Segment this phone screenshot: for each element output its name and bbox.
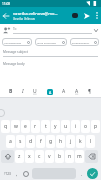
- button[interactable]: u: [61, 120, 70, 133]
- staticText: f: [40, 138, 42, 145]
- staticText: v: [48, 153, 51, 160]
- staticText: Uncategorized: [4, 41, 27, 44]
- button[interactable]: m: [75, 150, 84, 163]
- button[interactable]: t: [41, 120, 50, 133]
- staticText: w: [14, 123, 18, 130]
- button[interactable]: p: [91, 120, 100, 133]
- staticText: t: [45, 123, 47, 130]
- button[interactable]: g: [46, 135, 55, 148]
- staticText: y: [54, 123, 57, 130]
- button[interactable]: a: [6, 135, 15, 148]
- button[interactable]: s: [16, 135, 25, 148]
- button[interactable]: l: [86, 135, 95, 148]
- staticText: l: [90, 138, 92, 145]
- button[interactable]: b: [55, 150, 64, 163]
- staticText: Empfangsbest.: [72, 41, 94, 44]
- staticText: x: [28, 153, 31, 160]
- button[interactable]: w: [11, 120, 20, 133]
- button[interactable]: I: [22, 88, 24, 95]
- staticText: i: [75, 123, 77, 130]
- button[interactable]: ,: [13, 167, 21, 180]
- button[interactable]: To: [3, 24, 98, 36]
- staticText: a: [9, 138, 12, 145]
- button[interactable]: z: [15, 150, 24, 163]
- button[interactable]: B: [9, 88, 13, 95]
- staticText: e: [24, 123, 27, 130]
- button[interactable]: k: [76, 135, 85, 148]
- button[interactable]: v: [45, 150, 54, 163]
- staticText: z: [18, 153, 21, 160]
- staticText: To: [13, 27, 17, 31]
- staticText: n: [68, 153, 72, 160]
- button[interactable]: r: [31, 120, 40, 133]
- button[interactable]: y: [51, 120, 60, 133]
- button[interactable]: [85, 150, 98, 163]
- button[interactable]: i: [71, 120, 80, 133]
- button[interactable]: [93, 7, 101, 24]
- button[interactable]: d: [26, 135, 35, 148]
- button[interactable]: ¶: [88, 88, 92, 95]
- staticText: d: [29, 138, 33, 145]
- button[interactable]: U: [33, 88, 37, 95]
- button[interactable]: n: [65, 150, 74, 163]
- button[interactable]: [83, 7, 91, 24]
- button[interactable]: e: [21, 120, 30, 133]
- staticText: s: [19, 138, 22, 145]
- staticText: b: [58, 153, 62, 160]
- staticText: vasetka.velinova@mo...: [13, 11, 58, 16]
- staticText: j: [70, 138, 72, 145]
- staticText: .: [81, 171, 83, 177]
- staticText: h: [59, 138, 63, 145]
- staticText: Message body: [3, 62, 25, 66]
- staticText: More Prioritized: [37, 41, 62, 44]
- button[interactable]: x: [25, 150, 34, 163]
- staticText: q: [4, 123, 8, 130]
- button[interactable]: More Prioritized: [35, 38, 67, 46]
- button[interactable]: ?123: [0, 167, 14, 180]
- button[interactable]: [0, 7, 12, 24]
- staticText: c: [38, 153, 41, 160]
- button[interactable]: A: [47, 89, 53, 95]
- button[interactable]: Empfangsbest.: [70, 38, 99, 46]
- button[interactable]: Message subject: [3, 47, 98, 66]
- button[interactable]: [22, 170, 29, 177]
- staticText: A: [49, 90, 52, 95]
- staticText: o: [84, 123, 88, 130]
- button[interactable]: h: [56, 135, 65, 148]
- button[interactable]: A: [75, 88, 79, 95]
- button[interactable]: [72, 13, 78, 18]
- staticText: 15:08: [2, 2, 11, 6]
- button[interactable]: [1, 150, 14, 163]
- staticText: r: [34, 123, 37, 130]
- staticText: u: [64, 123, 68, 130]
- staticText: ?123: [4, 172, 11, 176]
- staticText: Vasetka Velinova: [13, 17, 35, 21]
- button[interactable]: A: [62, 88, 66, 95]
- button[interactable]: f: [36, 135, 45, 148]
- button[interactable]: c: [35, 150, 44, 163]
- button[interactable]: o: [81, 120, 90, 133]
- button[interactable]: [87, 168, 98, 179]
- staticText: m: [77, 153, 82, 160]
- staticText: p: [94, 123, 98, 130]
- button[interactable]: Uncategorized: [2, 38, 32, 46]
- staticText: g: [49, 138, 53, 145]
- button[interactable]: q: [1, 120, 10, 133]
- staticText: ,: [16, 171, 18, 177]
- staticText: Message subject: [3, 50, 28, 54]
- button[interactable]: j: [66, 135, 75, 148]
- staticText: k: [79, 138, 82, 145]
- button[interactable]: .: [78, 167, 86, 180]
